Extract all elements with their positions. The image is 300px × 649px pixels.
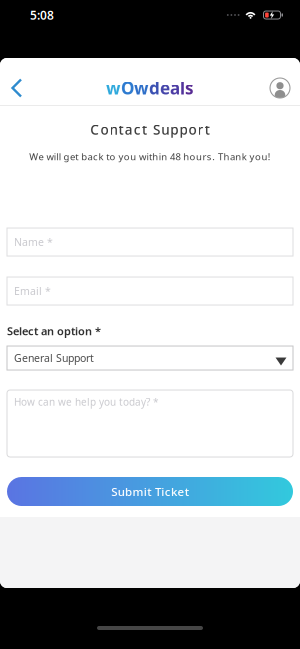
staticText: w: [106, 76, 121, 100]
button[interactable]: General Support: [7, 346, 293, 370]
button[interactable]: Email *: [7, 277, 293, 305]
staticText: General Support: [14, 351, 94, 365]
staticText: r: [198, 120, 204, 139]
staticText: t: [119, 120, 124, 139]
staticText: s: [185, 76, 194, 100]
staticText: e: [160, 76, 170, 100]
button[interactable]: How can we help you today? *: [7, 390, 293, 457]
staticText: o: [100, 120, 108, 139]
staticText: Submit Ticket: [111, 484, 189, 499]
staticText: Name *: [14, 235, 53, 249]
button[interactable]: [270, 78, 300, 98]
staticText: p: [170, 120, 178, 139]
staticText: u: [161, 120, 169, 139]
staticText: a: [125, 120, 133, 139]
staticText: l: [180, 76, 185, 100]
staticText: n: [109, 120, 117, 139]
staticText: w: [134, 76, 149, 100]
staticText: p: [179, 120, 187, 139]
staticText: S: [153, 120, 160, 139]
staticText: Email *: [14, 284, 51, 298]
staticText: Select an option *: [7, 323, 101, 338]
staticText: We will get back to you within 48 hours.…: [29, 150, 271, 163]
staticText: a: [170, 76, 180, 100]
staticText: How can we help you today? *: [14, 395, 159, 409]
button[interactable]: Name *: [7, 228, 293, 256]
staticText: 5:08: [30, 7, 54, 23]
staticText: c: [134, 120, 141, 139]
staticText: t: [205, 120, 210, 139]
staticText: o: [188, 120, 196, 139]
staticText: O: [121, 76, 134, 100]
staticText: C: [90, 120, 99, 139]
button[interactable]: Submit Ticket: [7, 477, 293, 506]
button[interactable]: [0, 78, 23, 98]
staticText: t: [142, 120, 147, 139]
staticText: d: [149, 76, 160, 100]
